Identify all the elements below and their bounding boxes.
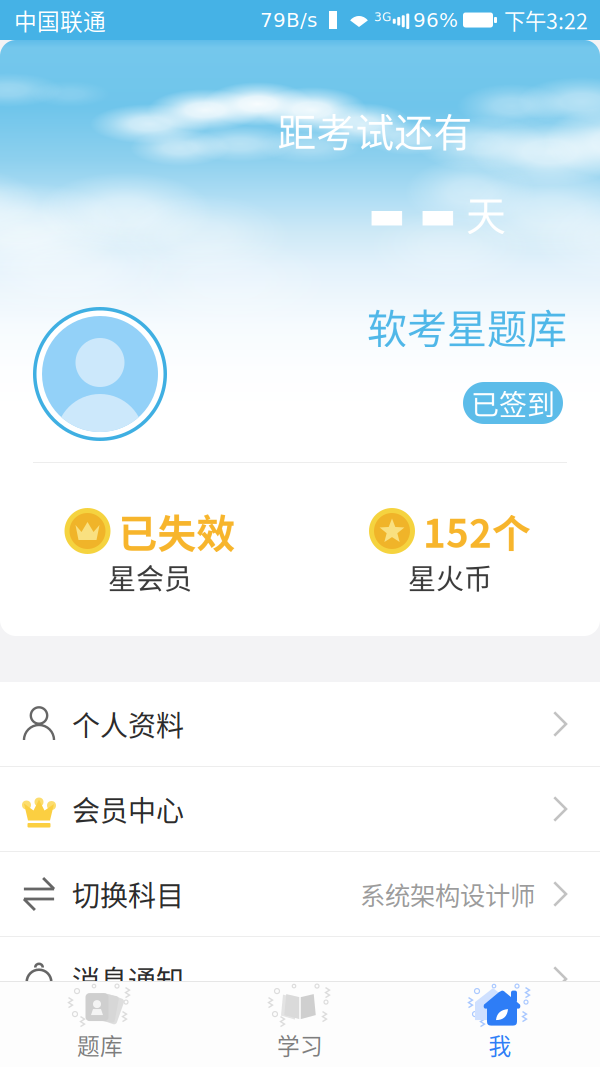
button[interactable]: 已签到 <box>463 382 563 424</box>
staticText: 会员中心 <box>72 789 184 829</box>
staticText: 系统架构设计师 <box>360 876 535 912</box>
button[interactable]: 题库 <box>0 982 200 1067</box>
staticText: 星会员 <box>108 557 192 597</box>
staticText: 下午3:22 <box>504 5 588 35</box>
staticText: 题库 <box>77 1028 123 1061</box>
staticText: ▬ ▬ 天 <box>368 184 506 242</box>
button[interactable]: 切换科目 <box>0 852 600 937</box>
staticText: 已失效 <box>118 503 235 559</box>
staticText: 152个 <box>423 503 531 559</box>
staticText: 距考试还有 <box>277 102 472 158</box>
staticText: 切换科目 <box>72 874 184 914</box>
button[interactable]: 学习 <box>200 982 400 1067</box>
staticText: 学习 <box>277 1028 323 1061</box>
staticText: 星火币 <box>408 557 492 597</box>
button[interactable]: 消息通知 <box>0 937 600 1022</box>
staticText: 96% <box>413 8 458 32</box>
staticText: 已签到 <box>471 383 555 423</box>
staticText: 我 <box>488 1028 511 1061</box>
staticText: 个人资料 <box>72 704 184 744</box>
button[interactable]: 个人资料 <box>0 682 600 767</box>
button[interactable]: 会员中心 <box>0 767 600 852</box>
staticText: 中国联通 <box>14 4 106 36</box>
staticText: 3G <box>374 10 391 24</box>
staticText: 消息通知 <box>72 959 184 999</box>
staticText: 79B/s <box>260 8 317 32</box>
button[interactable]: 我 <box>400 982 600 1067</box>
staticText: 软考星题库 <box>367 297 567 355</box>
